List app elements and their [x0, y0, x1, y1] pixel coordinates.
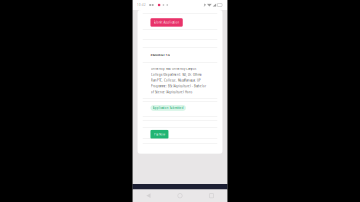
staticText: Application Submitted	[153, 106, 184, 110]
button[interactable]: Submit Application	[138, 14, 222, 29]
staticText: Pay Now	[154, 133, 165, 136]
staticText: Submit Application	[154, 21, 180, 24]
staticText: University: MSU University Campus Colleg…	[151, 67, 206, 94]
staticText: #ELIGIBILITYID	[150, 53, 170, 57]
staticText: 10:42	[137, 3, 146, 7]
button[interactable]: Pay Now	[138, 128, 222, 138]
